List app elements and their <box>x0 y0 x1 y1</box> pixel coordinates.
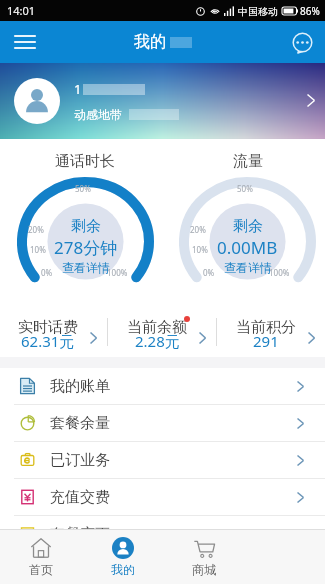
staticText: 中国移动 <box>238 5 278 18</box>
staticText: 20% <box>190 224 206 235</box>
staticText: 当前余额 <box>127 318 187 337</box>
button[interactable]: 商城 <box>163 530 244 584</box>
button[interactable]: 套餐变更 <box>0 516 325 552</box>
staticText: 278分钟 <box>54 236 118 259</box>
button[interactable]: 套餐余量 <box>0 405 325 441</box>
staticText: 100% <box>107 267 128 278</box>
staticText: 10% <box>192 244 208 255</box>
staticText: 1 <box>74 80 82 98</box>
staticText: 剩余 <box>233 217 263 236</box>
button[interactable]: 当前积分 <box>217 306 325 357</box>
button[interactable]: 我的 <box>82 530 163 584</box>
staticText: 首页 <box>29 562 53 577</box>
staticText: 套餐余量 <box>50 414 110 433</box>
staticText: 0% <box>41 267 53 278</box>
staticText: 62.31元 <box>21 331 75 351</box>
button[interactable]: 首页 <box>0 530 82 584</box>
staticText: 商城 <box>192 562 216 577</box>
staticText: 查看详情 <box>224 260 272 275</box>
button[interactable]: 当前余额 <box>108 306 216 357</box>
staticText: 0% <box>203 267 215 278</box>
staticText: 20% <box>28 224 44 235</box>
staticText: 291 <box>253 331 279 351</box>
staticText: 50% <box>237 183 253 194</box>
staticText: 86% <box>300 4 320 18</box>
staticText: 充值交费 <box>50 488 110 507</box>
button[interactable]: 我的账单 <box>0 368 325 404</box>
button[interactable]: Messages <box>285 25 319 59</box>
staticText: 已订业务 <box>50 451 110 470</box>
staticText: 套餐变更 <box>50 525 110 544</box>
staticText: 实时话费 <box>18 318 78 337</box>
staticText: 动感地带 <box>74 107 122 122</box>
staticText: 10% <box>30 244 46 255</box>
staticText: 14:01 <box>7 3 36 18</box>
staticText: 当前积分 <box>236 318 296 337</box>
staticText: 50% <box>75 183 91 194</box>
button[interactable]: Menu <box>8 25 42 59</box>
staticText: 流量 <box>233 152 263 171</box>
button[interactable]: 已订业务 <box>0 442 325 478</box>
staticText: 0.00MB <box>217 236 278 259</box>
button[interactable]: 充值交费 <box>0 479 325 515</box>
staticText: 我的 <box>134 32 166 52</box>
staticText: 100% <box>269 267 290 278</box>
button[interactable]: 剩余 <box>54 217 118 275</box>
staticText: 2.28元 <box>135 331 180 351</box>
staticText: 查看详情 <box>62 260 110 275</box>
button[interactable]: 1 <box>0 63 325 138</box>
staticText: 我的账单 <box>50 377 110 396</box>
staticText: 剩余 <box>71 217 101 236</box>
staticText: 我的 <box>111 562 135 577</box>
staticText: 通话时长 <box>55 152 115 171</box>
button[interactable]: 剩余 <box>217 217 278 275</box>
button[interactable]: 实时话费 <box>0 306 107 357</box>
